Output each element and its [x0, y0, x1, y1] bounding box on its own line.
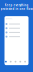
staticText: GENERAL — [6, 18, 13, 20]
staticText: Keep everything — [4, 3, 28, 7]
staticText: protected in one flow — [0, 7, 32, 11]
